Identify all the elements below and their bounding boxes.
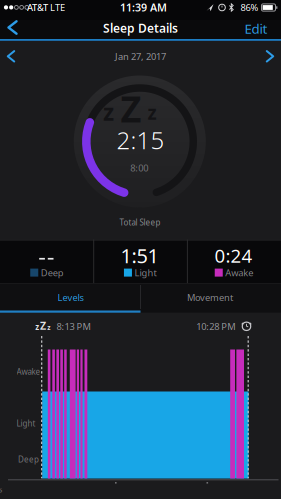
staticText: Levels — [57, 291, 83, 304]
staticText: 1:51 — [120, 242, 158, 269]
staticText: Light — [16, 418, 35, 429]
staticText: Light — [134, 266, 156, 279]
staticText: LTE — [50, 1, 65, 14]
staticText: Edit — [244, 20, 267, 37]
staticText: Z — [40, 318, 46, 333]
staticText: z — [35, 321, 39, 332]
staticText: 86% — [240, 1, 258, 14]
staticText: z — [103, 97, 114, 127]
staticText: z — [47, 323, 50, 332]
staticText: z — [147, 100, 156, 125]
staticText: Awake — [16, 366, 40, 377]
staticText: 11:39 AM — [120, 0, 167, 14]
staticText: 8:00 — [130, 162, 148, 174]
staticText: 2:15 — [116, 124, 164, 156]
staticText: s — [0, 484, 2, 495]
staticText: Total Sleep — [119, 217, 160, 228]
staticText: AT&T — [27, 1, 48, 14]
staticText: Deep — [18, 454, 39, 465]
staticText: 0:24 — [214, 243, 252, 268]
staticText: 10:28 PM — [196, 320, 235, 332]
staticText: Deep — [41, 266, 64, 279]
staticText: Jan 27, 2017 — [115, 50, 166, 63]
staticText: 8:13 PM — [56, 320, 90, 332]
staticText: Movement — [187, 291, 233, 304]
staticText: Awake — [225, 266, 253, 279]
staticText: Sleep Details — [103, 20, 178, 36]
staticText: Z — [120, 85, 141, 132]
